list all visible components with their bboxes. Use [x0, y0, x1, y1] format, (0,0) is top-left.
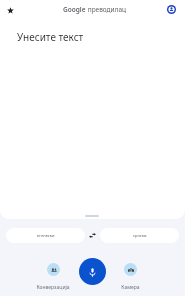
button[interactable]: енглески: [6, 228, 85, 243]
button[interactable]: Swap languages: [85, 228, 100, 243]
staticText: Камера: [121, 284, 140, 291]
button[interactable]: Google: [63, 5, 127, 14]
staticText: Google: [63, 5, 86, 14]
button[interactable]: Saved: [2, 2, 18, 18]
button[interactable]: Account: [162, 0, 180, 18]
staticText: Конверзација: [36, 284, 70, 291]
staticText: енглески: [37, 233, 55, 238]
staticText: српски: [133, 233, 147, 238]
button[interactable]: Конверзација: [25, 263, 81, 291]
button[interactable]: Microphone: [79, 258, 106, 285]
staticText: Унесите текст: [17, 30, 84, 44]
staticText: преводилац: [86, 5, 127, 14]
button[interactable]: српски: [100, 228, 179, 243]
button[interactable]: Камера: [102, 263, 158, 291]
